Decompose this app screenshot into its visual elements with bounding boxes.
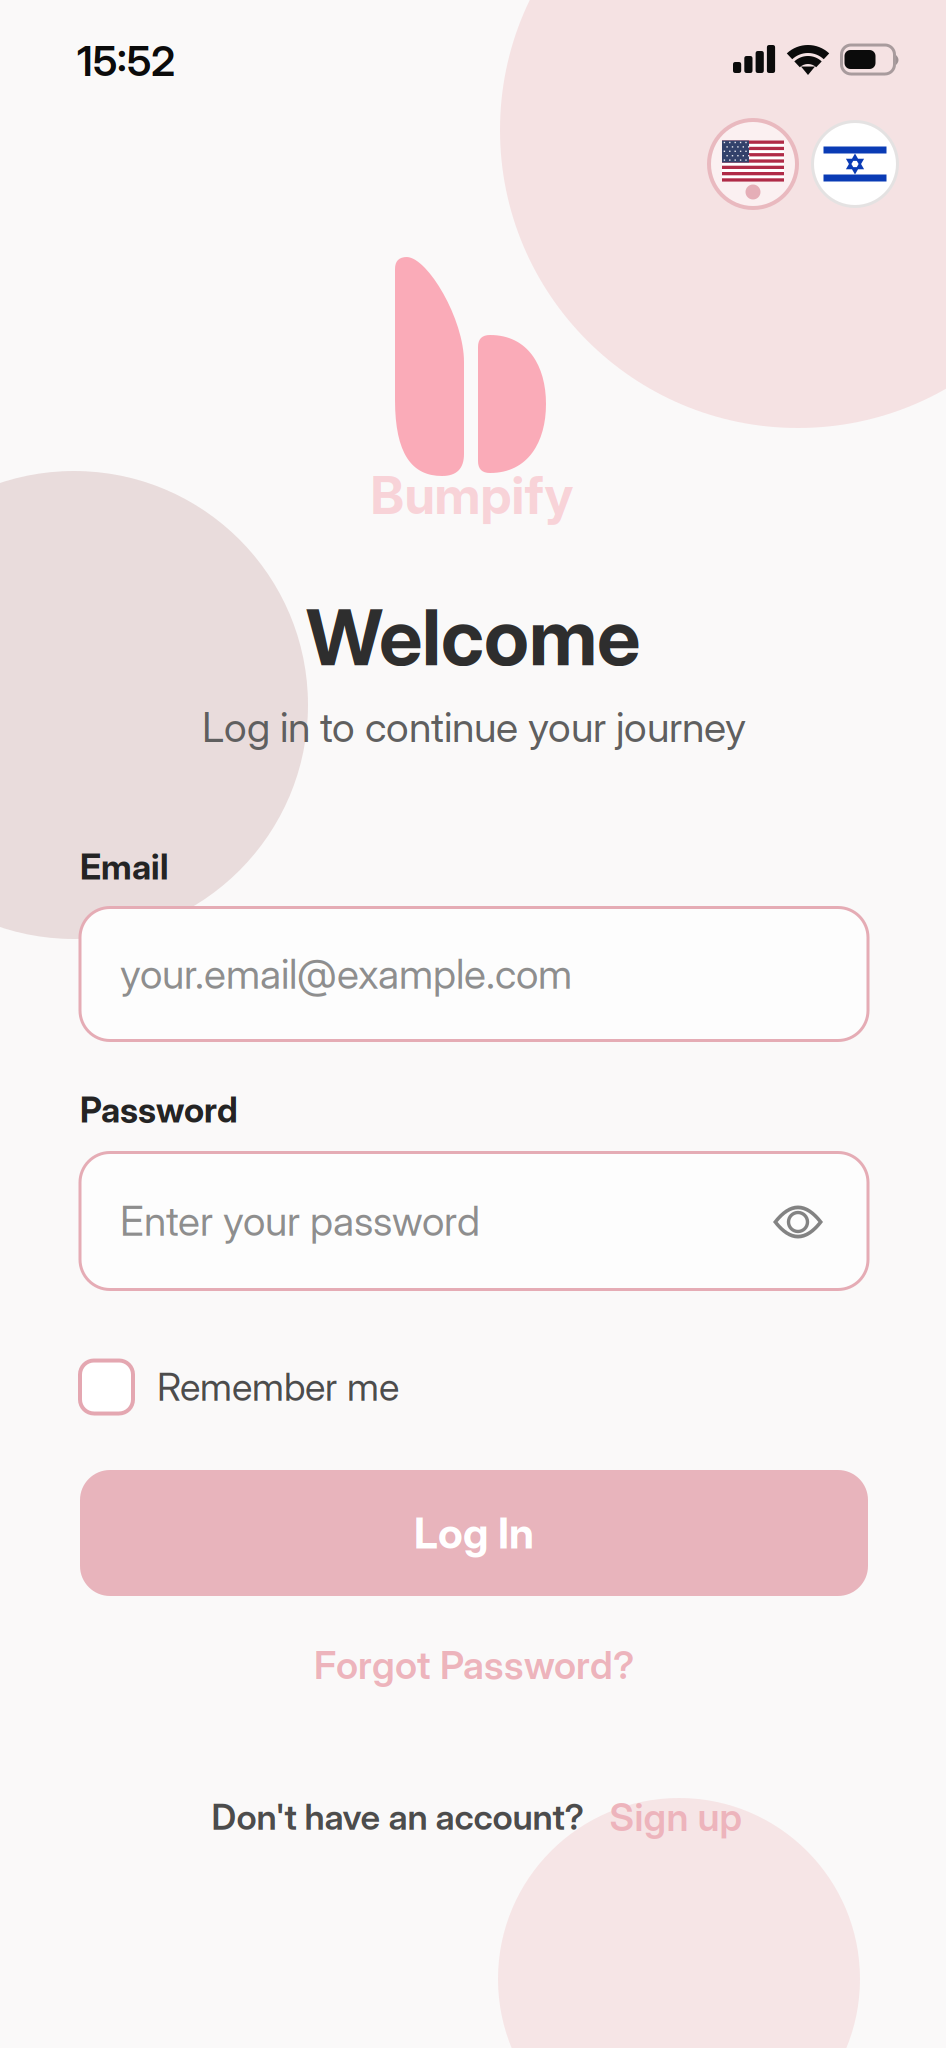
staticText: your.email@example.com: [120, 949, 572, 999]
staticText: Email: [80, 846, 169, 888]
button[interactable]: Sign up: [609, 1794, 742, 1840]
staticText: Bumpify: [370, 463, 573, 526]
button[interactable]: Hebrew: [812, 121, 897, 206]
staticText: Forgot Password?: [314, 1642, 634, 1688]
staticText: Password: [80, 1089, 238, 1131]
button[interactable]: Forgot Password?: [80, 1635, 868, 1695]
staticText: Remember me: [157, 1364, 399, 1410]
staticText: Welcome: [306, 590, 640, 684]
staticText: 15:52: [77, 36, 175, 86]
staticText: Enter your password: [120, 1196, 480, 1246]
button[interactable]: Remember me: [80, 1357, 480, 1417]
staticText: Log in to continue your journey: [202, 702, 746, 752]
button[interactable]: Show password: [773, 1205, 823, 1238]
staticText: Log In: [414, 1507, 534, 1559]
button[interactable]: Log In: [80, 1470, 868, 1596]
button[interactable]: English: [709, 120, 797, 208]
staticText: Don't have an account?: [211, 1796, 584, 1838]
staticText: Sign up: [609, 1794, 742, 1840]
